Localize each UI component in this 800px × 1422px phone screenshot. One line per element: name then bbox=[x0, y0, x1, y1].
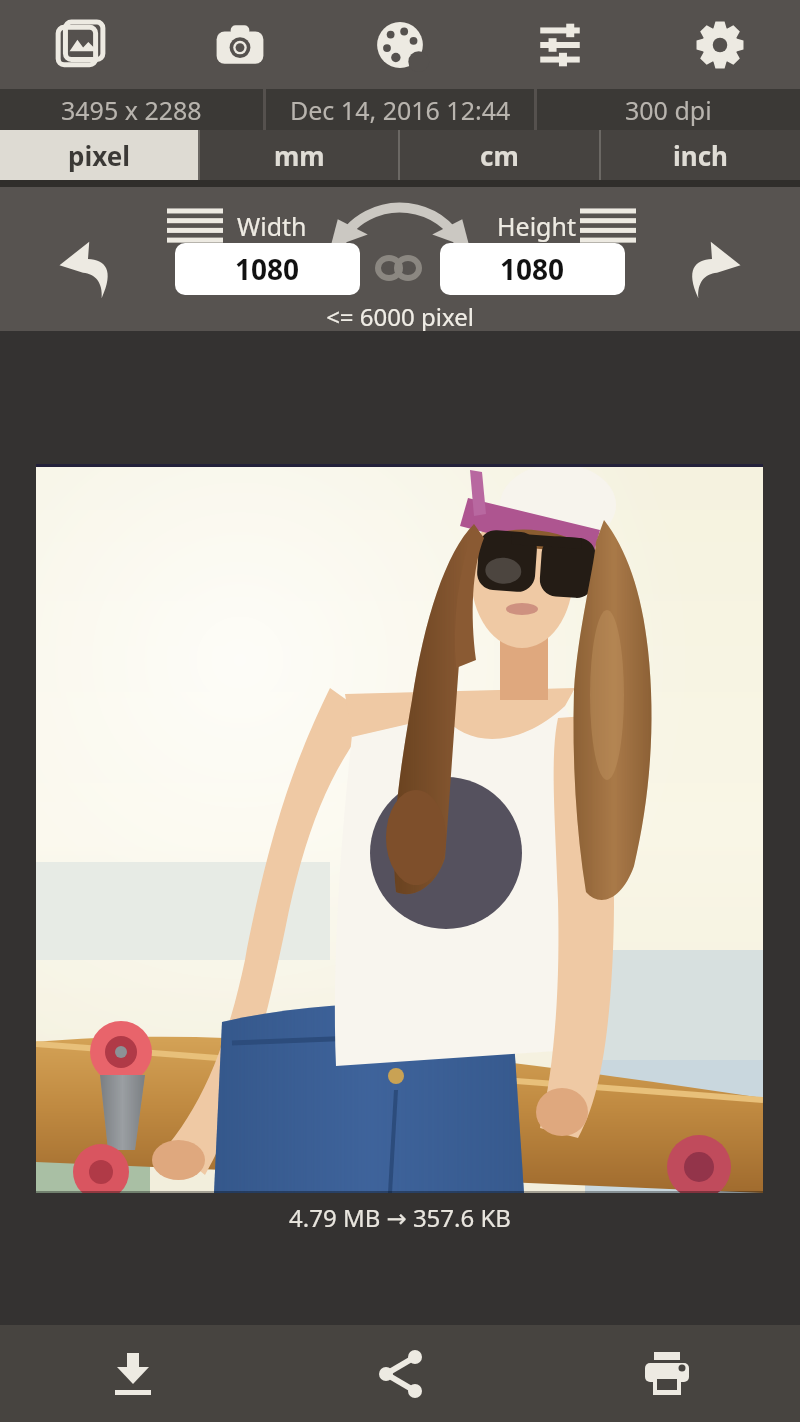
staticText: 1080 bbox=[235, 250, 300, 288]
staticText: mm bbox=[274, 138, 325, 173]
button[interactable]: 1080 bbox=[175, 243, 360, 295]
staticText: Width bbox=[237, 209, 307, 243]
button[interactable]: inch bbox=[601, 130, 800, 180]
staticText: <= 6000 pixel bbox=[0, 300, 800, 333]
staticText: 4.79 MB → 357.6 KB bbox=[0, 1201, 800, 1234]
button[interactable] bbox=[640, 0, 800, 89]
staticText: cm bbox=[480, 138, 519, 173]
button[interactable] bbox=[480, 0, 640, 89]
button[interactable] bbox=[320, 0, 480, 89]
staticText: 1080 bbox=[500, 250, 565, 288]
button[interactable] bbox=[0, 0, 160, 89]
button[interactable]: pixel bbox=[0, 130, 198, 180]
staticText: Height bbox=[497, 209, 576, 243]
button[interactable] bbox=[266, 1325, 533, 1422]
button[interactable] bbox=[48, 229, 128, 309]
button[interactable] bbox=[160, 0, 320, 89]
button[interactable] bbox=[0, 1325, 266, 1422]
staticText: pixel bbox=[68, 138, 130, 173]
staticText: Dec 14, 2016 12:44 bbox=[290, 93, 511, 127]
button[interactable] bbox=[165, 205, 225, 245]
button[interactable] bbox=[578, 205, 638, 245]
staticText: inch bbox=[673, 138, 728, 173]
button[interactable] bbox=[533, 1325, 800, 1422]
staticText: 300 dpi bbox=[625, 93, 712, 127]
button[interactable]: mm bbox=[200, 130, 398, 180]
button[interactable] bbox=[672, 229, 752, 309]
button[interactable]: 1080 bbox=[440, 243, 625, 295]
button[interactable]: cm bbox=[400, 130, 599, 180]
button[interactable] bbox=[375, 254, 425, 282]
staticText: 3495 x 2288 bbox=[61, 93, 202, 127]
